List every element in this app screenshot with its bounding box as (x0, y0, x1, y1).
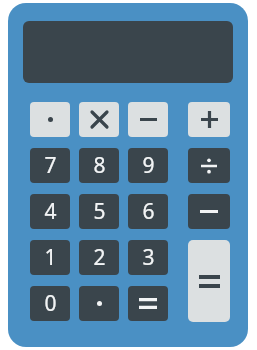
button[interactable]: 4 (30, 194, 70, 229)
staticText: 2 (93, 243, 106, 272)
button[interactable]: Minus (128, 102, 168, 137)
staticText: 4 (44, 197, 57, 226)
button[interactable]: 3 (128, 240, 168, 275)
staticText: 1 (44, 243, 57, 272)
button[interactable]: 7 (30, 148, 70, 183)
button[interactable]: Decimal point (79, 286, 119, 321)
button[interactable]: Divide (188, 148, 230, 183)
staticText: 0 (44, 289, 57, 318)
button[interactable]: Equals (188, 240, 230, 322)
button[interactable]: 2 (79, 240, 119, 275)
staticText: 5 (93, 197, 106, 226)
button[interactable]: Plus (188, 102, 230, 137)
staticText: 9 (142, 151, 155, 180)
button[interactable]: 9 (128, 148, 168, 183)
button[interactable]: Subtract (188, 194, 230, 229)
staticText: 3 (142, 243, 155, 272)
staticText: 6 (142, 197, 155, 226)
button[interactable]: 0 (30, 286, 70, 321)
staticText: 8 (93, 151, 106, 180)
button[interactable]: Equals (128, 286, 168, 321)
button[interactable]: 5 (79, 194, 119, 229)
staticText: 7 (44, 151, 57, 180)
button[interactable]: Decimal point (30, 102, 70, 137)
button[interactable]: Multiply (79, 102, 119, 137)
button[interactable]: 6 (128, 194, 168, 229)
button[interactable]: 1 (30, 240, 70, 275)
button[interactable]: 8 (79, 148, 119, 183)
